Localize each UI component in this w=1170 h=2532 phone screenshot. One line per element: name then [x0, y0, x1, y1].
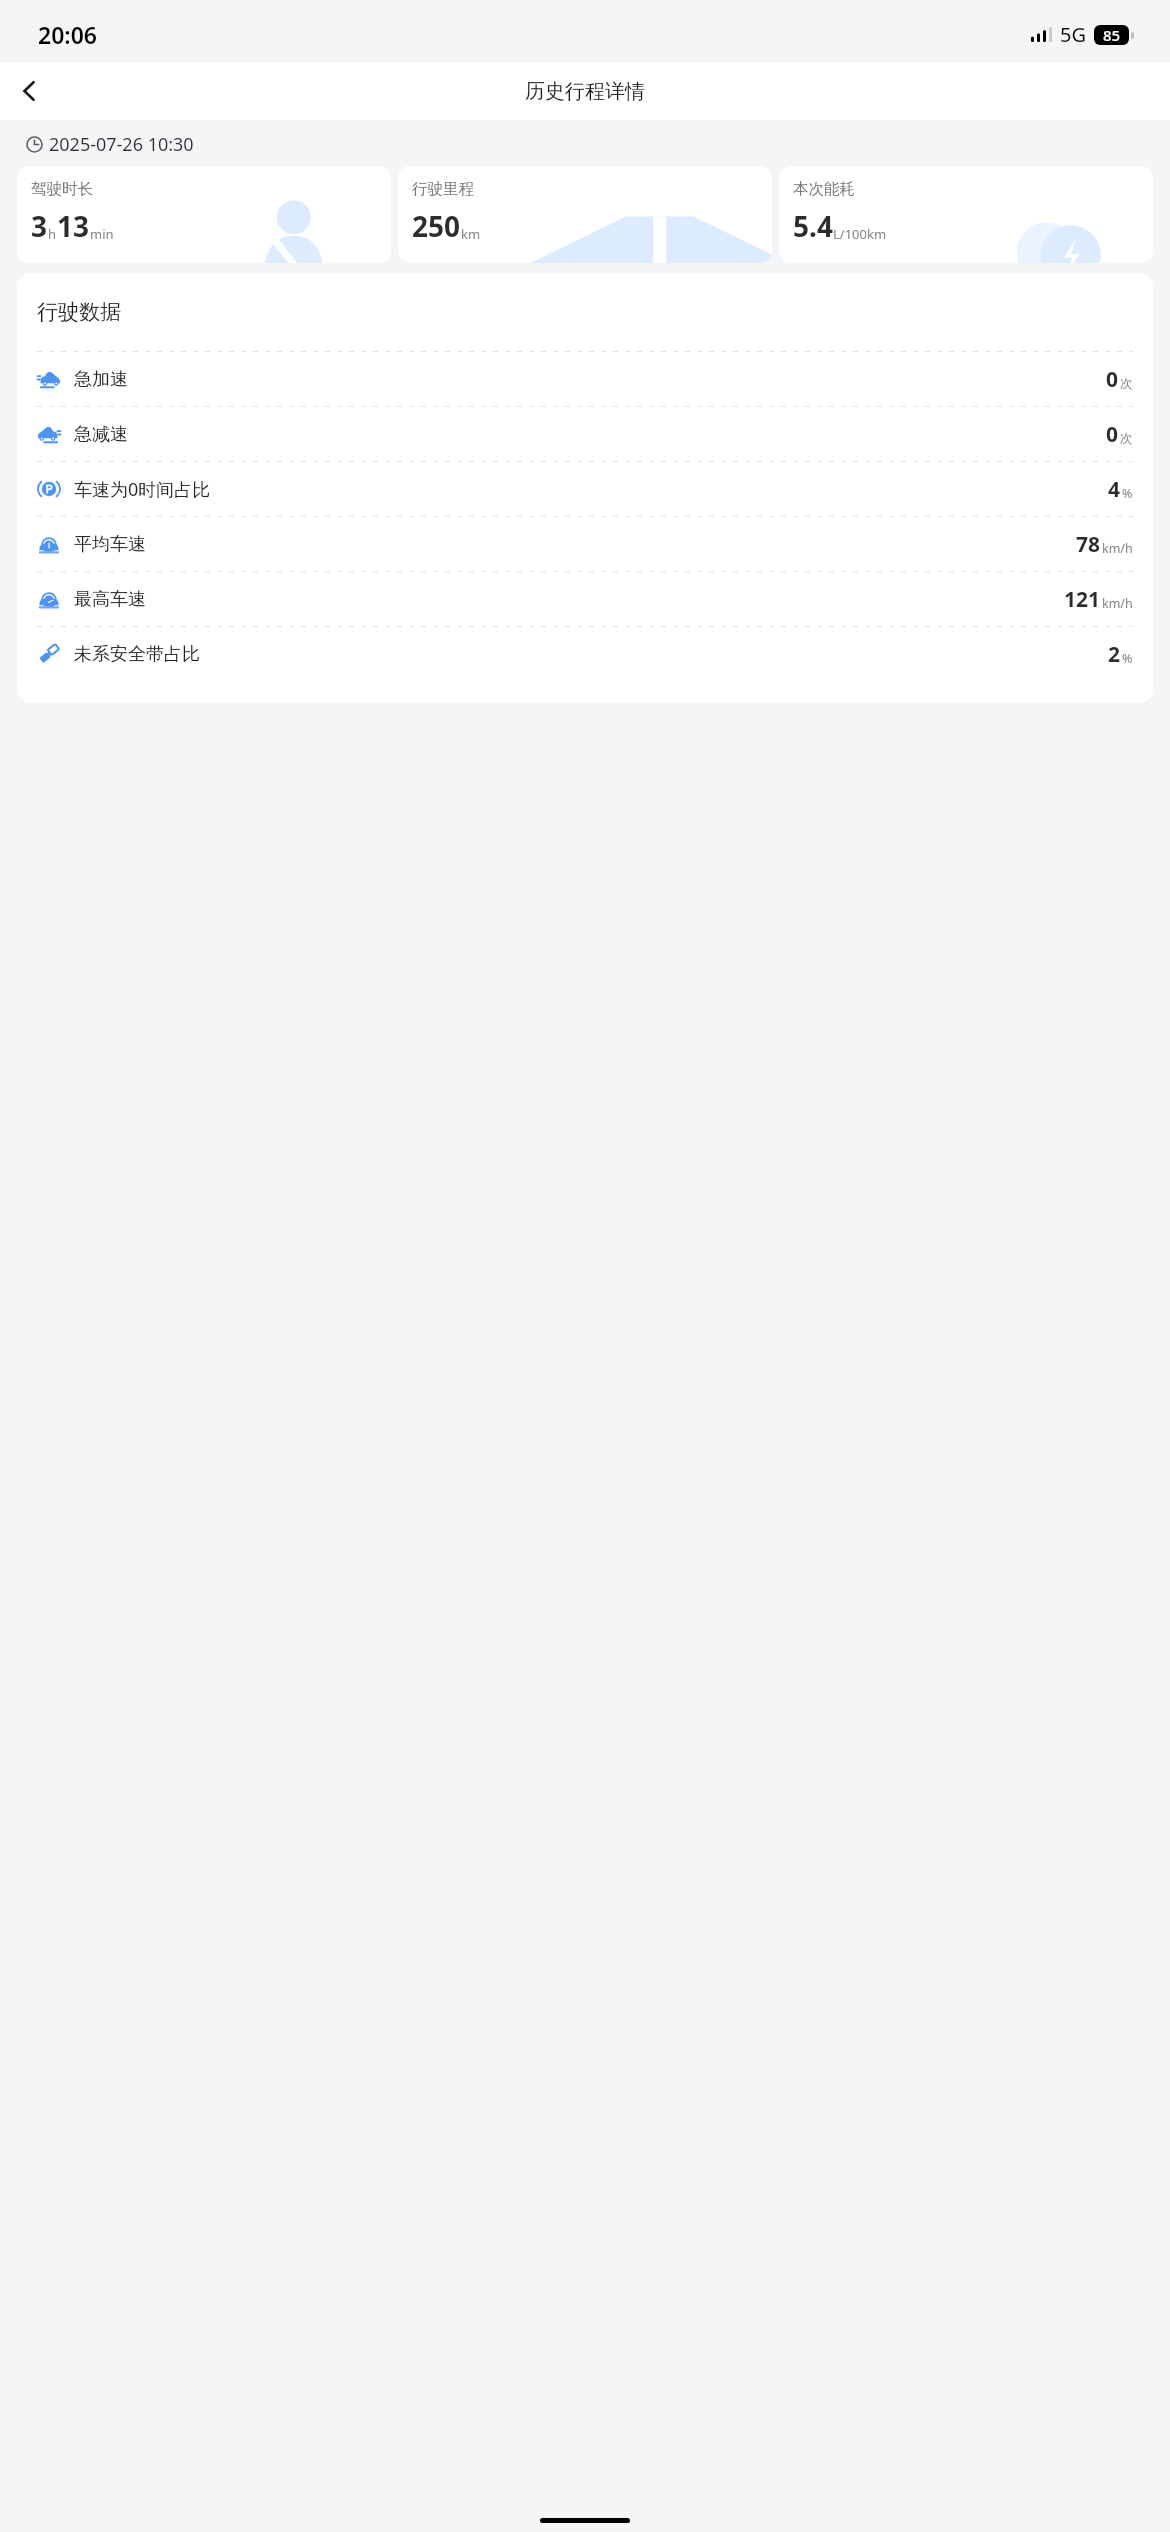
staticText: 最高车速 [74, 588, 146, 611]
staticText: 2 [1108, 640, 1121, 669]
button[interactable]: Back [6, 67, 54, 115]
staticText: 平均车速 [74, 533, 146, 556]
staticText: 未系安全带占比 [74, 643, 200, 666]
staticText: 历史行程详情 [525, 79, 645, 104]
staticText: 5.4 [793, 207, 833, 245]
button[interactable]: 最高车速 [37, 572, 1133, 626]
button[interactable]: 平均车速 [37, 517, 1133, 571]
staticText: 行驶数据 [37, 299, 121, 325]
staticText: 2025-07-26 10:30 [49, 132, 194, 157]
staticText: 13 [57, 207, 90, 245]
staticText: 78 [1076, 530, 1101, 559]
staticText: 次 [1120, 431, 1133, 447]
button[interactable]: 行驶里程 [398, 166, 772, 263]
button[interactable]: 急减速 [37, 407, 1133, 461]
staticText: km/h [1102, 540, 1133, 557]
button[interactable]: 未系安全带占比 [37, 627, 1133, 681]
staticText: 3 [31, 207, 48, 245]
staticText: 驾驶时长 [31, 179, 93, 199]
staticText: min [90, 225, 114, 243]
button[interactable]: 本次能耗 [779, 166, 1153, 263]
staticText: km/h [1102, 595, 1133, 612]
button[interactable]: 车速为0时间占比 [37, 462, 1133, 516]
button[interactable]: 驾驶时长 [17, 166, 391, 263]
staticText: % [1122, 650, 1133, 667]
staticText: 20:06 [38, 19, 97, 50]
staticText: 车速为0时间占比 [74, 477, 211, 502]
staticText: 121 [1064, 585, 1101, 614]
staticText: h [48, 225, 57, 243]
staticText: 250 [412, 207, 461, 245]
staticText: L/100km [833, 225, 887, 243]
staticText: 次 [1120, 376, 1133, 392]
button[interactable]: 急加速 [37, 352, 1133, 406]
staticText: 急减速 [74, 423, 128, 446]
staticText: 4 [1108, 475, 1121, 504]
staticText: % [1122, 485, 1133, 502]
staticText: km [461, 225, 481, 243]
staticText: 0 [1106, 420, 1119, 449]
staticText: 本次能耗 [793, 179, 855, 199]
staticText: 0 [1106, 365, 1119, 394]
staticText: 急加速 [74, 368, 128, 391]
staticText: 行驶里程 [412, 179, 474, 199]
staticText: 5G [1060, 21, 1086, 48]
staticText: 85 [1103, 25, 1121, 45]
